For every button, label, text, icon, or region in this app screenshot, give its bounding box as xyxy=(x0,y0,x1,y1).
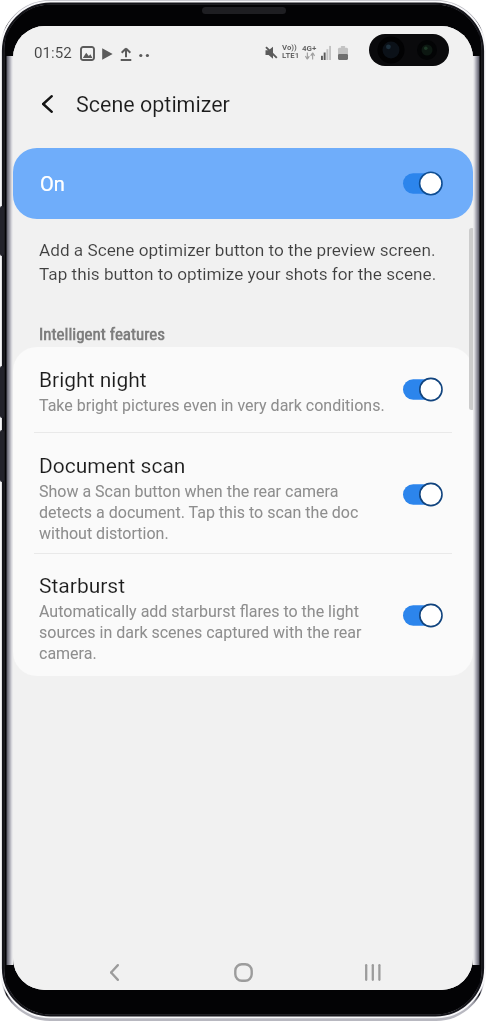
staticText: Automatically add starburst flares to th… xyxy=(39,600,391,663)
staticText: Vo)) xyxy=(282,44,297,52)
button[interactable]: Navigate up xyxy=(30,87,64,121)
button[interactable]: Back xyxy=(74,947,154,990)
staticText: Show a Scan button when the rear camera … xyxy=(39,480,391,543)
button[interactable]: Recent apps xyxy=(332,947,412,990)
button[interactable]: Starburst xyxy=(13,554,473,676)
staticText: Scene optimizer xyxy=(76,92,230,117)
staticText: On xyxy=(40,172,65,195)
button[interactable]: Home xyxy=(203,947,283,990)
staticText: Document scan xyxy=(39,454,186,479)
staticText: LTE1 xyxy=(282,52,300,60)
button[interactable]: On xyxy=(13,148,473,219)
staticText: 4G+ xyxy=(302,44,317,52)
staticText: 01:52 xyxy=(34,44,72,62)
staticText: Bright night xyxy=(39,368,147,393)
button[interactable]: Bright night xyxy=(13,347,473,432)
button[interactable]: Document scan xyxy=(13,433,473,554)
staticText: Take bright pictures even in very dark c… xyxy=(39,394,391,415)
staticText: Intelligent features xyxy=(39,324,165,344)
staticText: Starburst xyxy=(39,574,126,599)
staticText: Add a Scene optimizer button to the prev… xyxy=(39,237,469,285)
